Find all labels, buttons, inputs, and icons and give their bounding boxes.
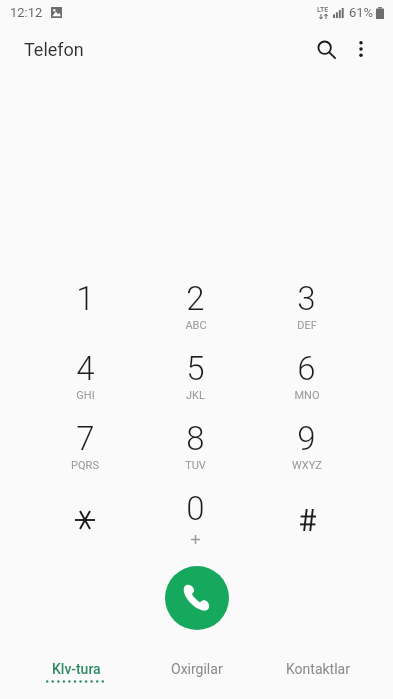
staticText: PQRS — [71, 459, 99, 472]
staticText: 4 — [76, 349, 95, 388]
button[interactable]: 4 — [30, 349, 140, 419]
button[interactable]: 9 — [251, 419, 362, 489]
button[interactable]: Oxirgilar — [136, 661, 257, 699]
staticText: 9 — [297, 419, 316, 458]
staticText: WXYZ — [292, 459, 322, 472]
staticText: GHI — [76, 389, 95, 402]
staticText: Telefon — [24, 39, 84, 60]
button[interactable]: 3 — [251, 279, 362, 349]
button[interactable]: Call — [165, 566, 229, 630]
staticText: 6 — [297, 349, 316, 388]
button[interactable]: 6 — [251, 349, 362, 419]
button[interactable]: 7 — [30, 419, 140, 489]
staticText: 0 — [186, 489, 205, 528]
staticText: Klv-tura — [52, 661, 101, 677]
button[interactable]: 5 — [140, 349, 251, 419]
button[interactable]: 2 — [140, 279, 251, 349]
staticText: 3 — [297, 279, 316, 318]
staticText: 7 — [76, 419, 95, 458]
staticText: TUV — [185, 459, 206, 472]
staticText: JKL — [186, 389, 205, 402]
button[interactable]: 0 — [140, 489, 251, 559]
staticText: ABC — [185, 319, 207, 332]
button[interactable] — [251, 489, 362, 559]
button[interactable]: 8 — [140, 419, 251, 489]
staticText: 1 — [76, 279, 95, 318]
staticText: 12:12 — [10, 5, 43, 20]
staticText: LTE — [317, 6, 329, 14]
button[interactable]: Search — [304, 26, 350, 72]
button[interactable]: 1 — [30, 279, 140, 349]
staticText: 2 — [186, 279, 205, 318]
staticText: Oxirgilar — [171, 661, 223, 677]
staticText: 8 — [186, 419, 205, 458]
staticText: DEF — [297, 319, 317, 332]
button[interactable]: Kontaktlar — [257, 661, 378, 699]
button[interactable]: More options — [338, 26, 384, 72]
staticText: 61% — [349, 5, 374, 20]
button[interactable]: Klv-tura — [16, 661, 136, 699]
staticText: Kontaktlar — [286, 661, 350, 677]
staticText: 5 — [186, 349, 205, 388]
staticText: MNO — [294, 389, 320, 402]
button[interactable] — [30, 489, 140, 559]
